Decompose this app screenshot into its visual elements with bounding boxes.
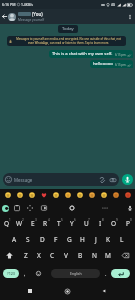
button[interactable]: D xyxy=(35,231,49,247)
button[interactable]: B xyxy=(73,247,87,263)
button[interactable]: K xyxy=(102,231,115,247)
button[interactable]: 6 xyxy=(65,215,79,231)
button[interactable]: Back xyxy=(98,285,110,297)
staticText: 2 xyxy=(22,218,24,222)
button[interactable]: , xyxy=(21,269,29,278)
staticText: ?123 xyxy=(7,271,15,276)
staticText: V xyxy=(64,251,68,260)
button[interactable]: Messages to yourself are end-to-end encr… xyxy=(7,36,126,46)
staticText: N xyxy=(92,251,97,260)
staticText: 9 xyxy=(116,218,118,222)
button[interactable]: 5 xyxy=(52,215,65,231)
staticText: U xyxy=(84,219,89,228)
button[interactable]: Clipboard xyxy=(12,203,22,213)
staticText: 3 xyxy=(35,218,37,222)
button[interactable] xyxy=(99,190,108,199)
button[interactable] xyxy=(75,190,84,199)
staticText: A xyxy=(12,235,17,244)
button[interactable]: F xyxy=(49,231,63,247)
button[interactable]: H xyxy=(76,231,89,247)
button[interactable]: L xyxy=(115,231,128,247)
button[interactable]: Emoji xyxy=(34,269,43,278)
button[interactable]: Z xyxy=(19,247,32,263)
button[interactable]: . xyxy=(102,269,110,278)
staticText: H xyxy=(80,235,85,244)
staticText: X xyxy=(37,251,41,260)
button[interactable]: GIF xyxy=(25,203,35,213)
button[interactable] xyxy=(39,190,48,199)
staticText: Message xyxy=(14,177,33,183)
button[interactable]: 7 xyxy=(79,215,93,231)
staticText: C xyxy=(50,251,55,260)
button[interactable] xyxy=(111,190,120,199)
button[interactable]: Back xyxy=(0,9,8,24)
button[interactable]: Today xyxy=(58,25,78,33)
button[interactable]: Message xyxy=(3,173,119,186)
button[interactable]: 2 xyxy=(13,215,26,231)
button[interactable]: 9 xyxy=(107,215,121,231)
staticText: 1.4KB/s xyxy=(21,2,33,7)
button[interactable] xyxy=(27,190,36,199)
staticText: 4 xyxy=(48,218,50,222)
staticText: Message yourself xyxy=(18,18,45,22)
button[interactable]: S xyxy=(21,231,35,247)
staticText: K xyxy=(106,235,111,244)
button[interactable]: Stickers xyxy=(39,203,49,213)
button[interactable]: Shift xyxy=(0,247,19,263)
button[interactable]: This is a chat with my own self. xyxy=(49,50,133,58)
staticText: 1 xyxy=(9,218,11,222)
button[interactable]: Google xyxy=(0,203,10,213)
button[interactable]: ?123 xyxy=(3,269,19,278)
staticText: 6:15 pm xyxy=(115,63,126,67)
staticText: 7 xyxy=(88,218,90,222)
button[interactable]: 0 xyxy=(121,215,135,231)
button[interactable]: V xyxy=(59,247,73,263)
button[interactable] xyxy=(51,190,60,199)
button[interactable]: More options xyxy=(125,9,135,24)
button[interactable]: 1 xyxy=(0,215,13,231)
button[interactable]: Space xyxy=(51,269,100,278)
button[interactable]: hellooooo xyxy=(90,60,133,68)
button[interactable]: C xyxy=(45,247,59,263)
button[interactable]: Settings xyxy=(67,203,77,213)
staticText: 6:15 pm xyxy=(115,53,126,57)
staticText: 6 xyxy=(74,218,76,222)
staticText: L xyxy=(120,235,124,244)
staticText: P xyxy=(126,219,130,228)
staticText: English xyxy=(70,271,82,276)
button[interactable]: G xyxy=(63,231,76,247)
staticText: Messages to yourself are end-to-end encr… xyxy=(13,37,124,45)
button[interactable]: 8 xyxy=(93,215,107,231)
button[interactable]: A xyxy=(7,231,21,247)
button[interactable]: Home xyxy=(61,285,73,297)
button[interactable]: X xyxy=(32,247,45,263)
staticText: 0 xyxy=(130,218,132,222)
button[interactable]: 3 xyxy=(26,215,39,231)
staticText: W xyxy=(16,219,23,228)
staticText: O xyxy=(111,219,117,228)
button[interactable]: N xyxy=(87,247,101,263)
button[interactable]: M xyxy=(101,247,115,263)
button[interactable] xyxy=(123,190,132,199)
button[interactable]: More xyxy=(100,203,110,213)
staticText: 5 xyxy=(61,218,63,222)
staticText: J xyxy=(95,235,97,244)
button[interactable]: Recents xyxy=(24,285,36,297)
button[interactable] xyxy=(15,190,24,199)
button[interactable]: Voice input xyxy=(125,203,135,213)
staticText: I xyxy=(99,219,102,228)
staticText: S xyxy=(26,235,30,244)
button[interactable]: 4 xyxy=(39,215,52,231)
button[interactable]: Backspace xyxy=(115,247,135,263)
button[interactable] xyxy=(3,190,12,199)
button[interactable]: J xyxy=(89,231,102,247)
staticText: F xyxy=(54,235,58,244)
staticText: 4G xyxy=(111,3,116,7)
button[interactable] xyxy=(87,190,96,199)
button[interactable]: Enter xyxy=(111,269,130,278)
staticText: Q xyxy=(4,219,10,228)
button[interactable] xyxy=(63,190,72,199)
button[interactable]: Voice message xyxy=(122,174,133,185)
staticText: R xyxy=(43,219,48,228)
staticText: E xyxy=(31,219,35,228)
